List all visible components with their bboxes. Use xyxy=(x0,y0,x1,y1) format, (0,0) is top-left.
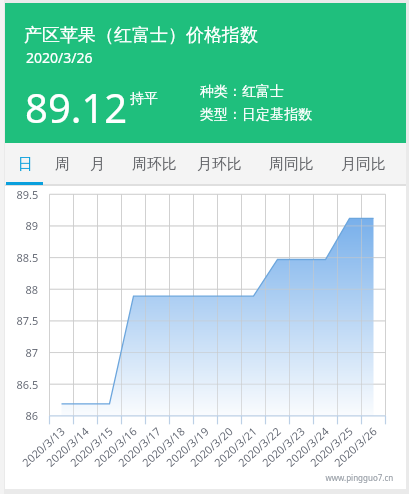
staticText: 类型：日定基指数 xyxy=(200,106,312,124)
button[interactable]: 周 xyxy=(45,143,79,185)
staticText: 产区苹果（红富士）价格指数 xyxy=(24,24,258,47)
staticText: 月 xyxy=(90,155,105,174)
button[interactable]: 日 xyxy=(8,143,42,185)
staticText: 月环比 xyxy=(197,155,242,174)
staticText: 持平 xyxy=(130,90,158,108)
staticText: 周同比 xyxy=(269,155,314,174)
staticText: 周环比 xyxy=(132,155,177,174)
staticText: 月同比 xyxy=(341,155,386,174)
staticText: 日 xyxy=(18,155,33,174)
button[interactable]: 月 xyxy=(80,143,114,185)
staticText: 周 xyxy=(55,155,70,174)
button[interactable]: 月同比 xyxy=(333,143,393,185)
staticText: 2020/3/26 xyxy=(26,48,93,67)
staticText: 89.12 xyxy=(25,80,128,134)
button[interactable]: 周同比 xyxy=(261,143,321,185)
button[interactable]: 周环比 xyxy=(124,143,184,185)
button[interactable]: 月环比 xyxy=(189,143,249,185)
staticText: 种类：红富士 xyxy=(200,83,284,101)
